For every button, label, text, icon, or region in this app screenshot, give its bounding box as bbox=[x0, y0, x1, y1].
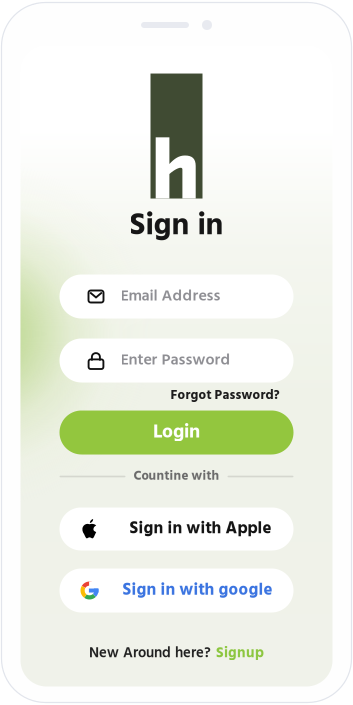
staticText: Email Address bbox=[120, 284, 220, 309]
staticText: Enter Password bbox=[120, 348, 230, 373]
button[interactable]: Sign in with Apple bbox=[59, 507, 293, 550]
staticText: New Around here? bbox=[89, 642, 211, 665]
staticText: Sign in with Apple bbox=[129, 516, 271, 542]
staticText: Countine with bbox=[133, 466, 219, 487]
button[interactable]: Login bbox=[59, 410, 293, 454]
staticText: Sign in with google bbox=[122, 577, 272, 604]
staticText: Signup bbox=[216, 642, 264, 665]
button[interactable]: Signup bbox=[216, 642, 264, 665]
staticText: Forgot Password? bbox=[170, 385, 279, 406]
button[interactable]: Sign in with google bbox=[59, 568, 293, 612]
staticText: Sign in bbox=[129, 202, 223, 251]
button[interactable]: Forgot Password? bbox=[170, 388, 279, 402]
staticText: Login bbox=[153, 417, 200, 448]
